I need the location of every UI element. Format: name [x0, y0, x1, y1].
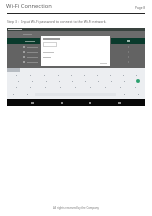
button[interactable]: [39, 78, 53, 84]
button[interactable]: [23, 84, 38, 90]
button[interactable]: [53, 84, 68, 90]
button[interactable]: [11, 78, 25, 84]
staticText: Wi-Fi Connection: [6, 2, 52, 10]
button[interactable]: [113, 84, 128, 90]
button[interactable]: [68, 84, 83, 90]
button[interactable]: [118, 78, 131, 84]
button[interactable]: [38, 84, 53, 90]
button[interactable]: [9, 84, 23, 90]
button[interactable]: [25, 78, 39, 84]
button[interactable]: [7, 55, 40, 59]
button[interactable]: [66, 78, 79, 84]
button[interactable]: [78, 72, 91, 78]
button[interactable]: [79, 78, 92, 84]
button[interactable]: [7, 90, 20, 99]
button[interactable]: [7, 50, 40, 54]
other: Enter: [136, 79, 140, 83]
button[interactable]: [51, 72, 65, 78]
button[interactable]: [7, 45, 40, 49]
button[interactable]: [65, 72, 78, 78]
button[interactable]: [91, 72, 104, 78]
button[interactable]: [128, 84, 143, 90]
staticText: Step 3 : Input Wi-Fi password to connect…: [7, 19, 107, 24]
button[interactable]: [98, 84, 113, 90]
button[interactable]: [9, 72, 23, 78]
button[interactable]: [37, 72, 51, 78]
button[interactable]: [53, 78, 66, 84]
button[interactable]: [83, 84, 98, 90]
button[interactable]: [117, 72, 130, 78]
button[interactable]: [92, 78, 105, 84]
button[interactable]: [23, 72, 37, 78]
button[interactable]: [20, 90, 34, 99]
button[interactable]: [117, 90, 131, 99]
button[interactable]: Wi-Fi toggle: [111, 38, 145, 44]
button[interactable]: [130, 72, 143, 78]
button[interactable]: [7, 60, 40, 64]
button[interactable]: Enter: [131, 78, 144, 84]
staticText: All rights reserved by the Company: [53, 206, 99, 210]
button[interactable]: [104, 72, 117, 78]
staticText: Page 8: [135, 6, 146, 10]
button[interactable]: [105, 78, 118, 84]
button[interactable]: [131, 90, 145, 99]
button[interactable]: [7, 38, 40, 44]
